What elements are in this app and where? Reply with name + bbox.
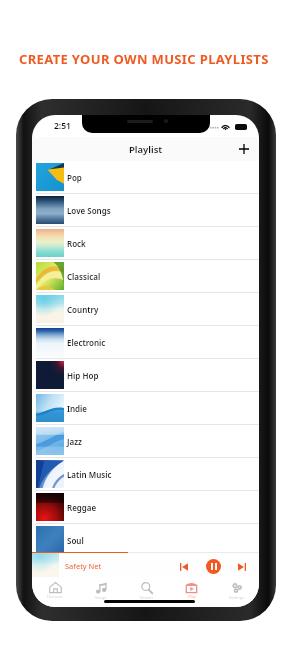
button[interactable]: Electronic [32,326,259,359]
staticText: Playlist [129,143,163,156]
button[interactable]: Search [124,578,169,607]
button[interactable]: Soul [32,524,259,557]
staticText: Country [67,304,99,315]
button[interactable]: Pause [206,559,221,574]
staticText: Pop [67,172,82,183]
staticText: Soul [67,535,84,546]
button[interactable]: Indie [32,392,259,425]
button[interactable]: Discover [32,578,78,607]
staticText: Electronic [67,337,106,348]
staticText: Play [188,594,196,599]
button[interactable]: Settings [214,578,259,607]
button[interactable]: Jazz [32,425,259,458]
staticText: Rock [67,238,86,249]
staticText: Latin Music [67,469,112,480]
staticText: Search [140,595,153,600]
staticText: Jazz [67,436,82,447]
button[interactable]: Latin Music [32,458,259,491]
button[interactable]: Rock [32,227,259,260]
button[interactable]: Classical [32,260,259,293]
staticText: Hip Hop [67,370,99,381]
staticText: Reggae [67,502,97,513]
button[interactable]: Love Songs [32,194,259,227]
button[interactable]: Songs [78,578,124,607]
button[interactable]: Pop [32,161,259,194]
button[interactable]: Add playlist [236,141,252,157]
staticText: Discover [47,594,64,599]
button[interactable]: Previous track [176,559,191,574]
staticText: Love Songs [67,205,111,216]
staticText: 2:51 [54,120,71,132]
staticText: Classical [67,271,101,282]
button[interactable]: Next track [234,559,249,574]
staticText: Songs [95,595,107,600]
staticText: Settings [229,595,245,600]
button[interactable]: Reggae [32,491,259,524]
button[interactable]: Hip Hop [32,359,259,392]
staticText: CREATE YOUR OWN MUSIC PLAYLISTS [19,50,269,68]
staticText: Indie [67,403,88,414]
button[interactable]: Country [32,293,259,326]
staticText: Safety Net [65,561,102,571]
button[interactable]: Play [169,578,214,607]
